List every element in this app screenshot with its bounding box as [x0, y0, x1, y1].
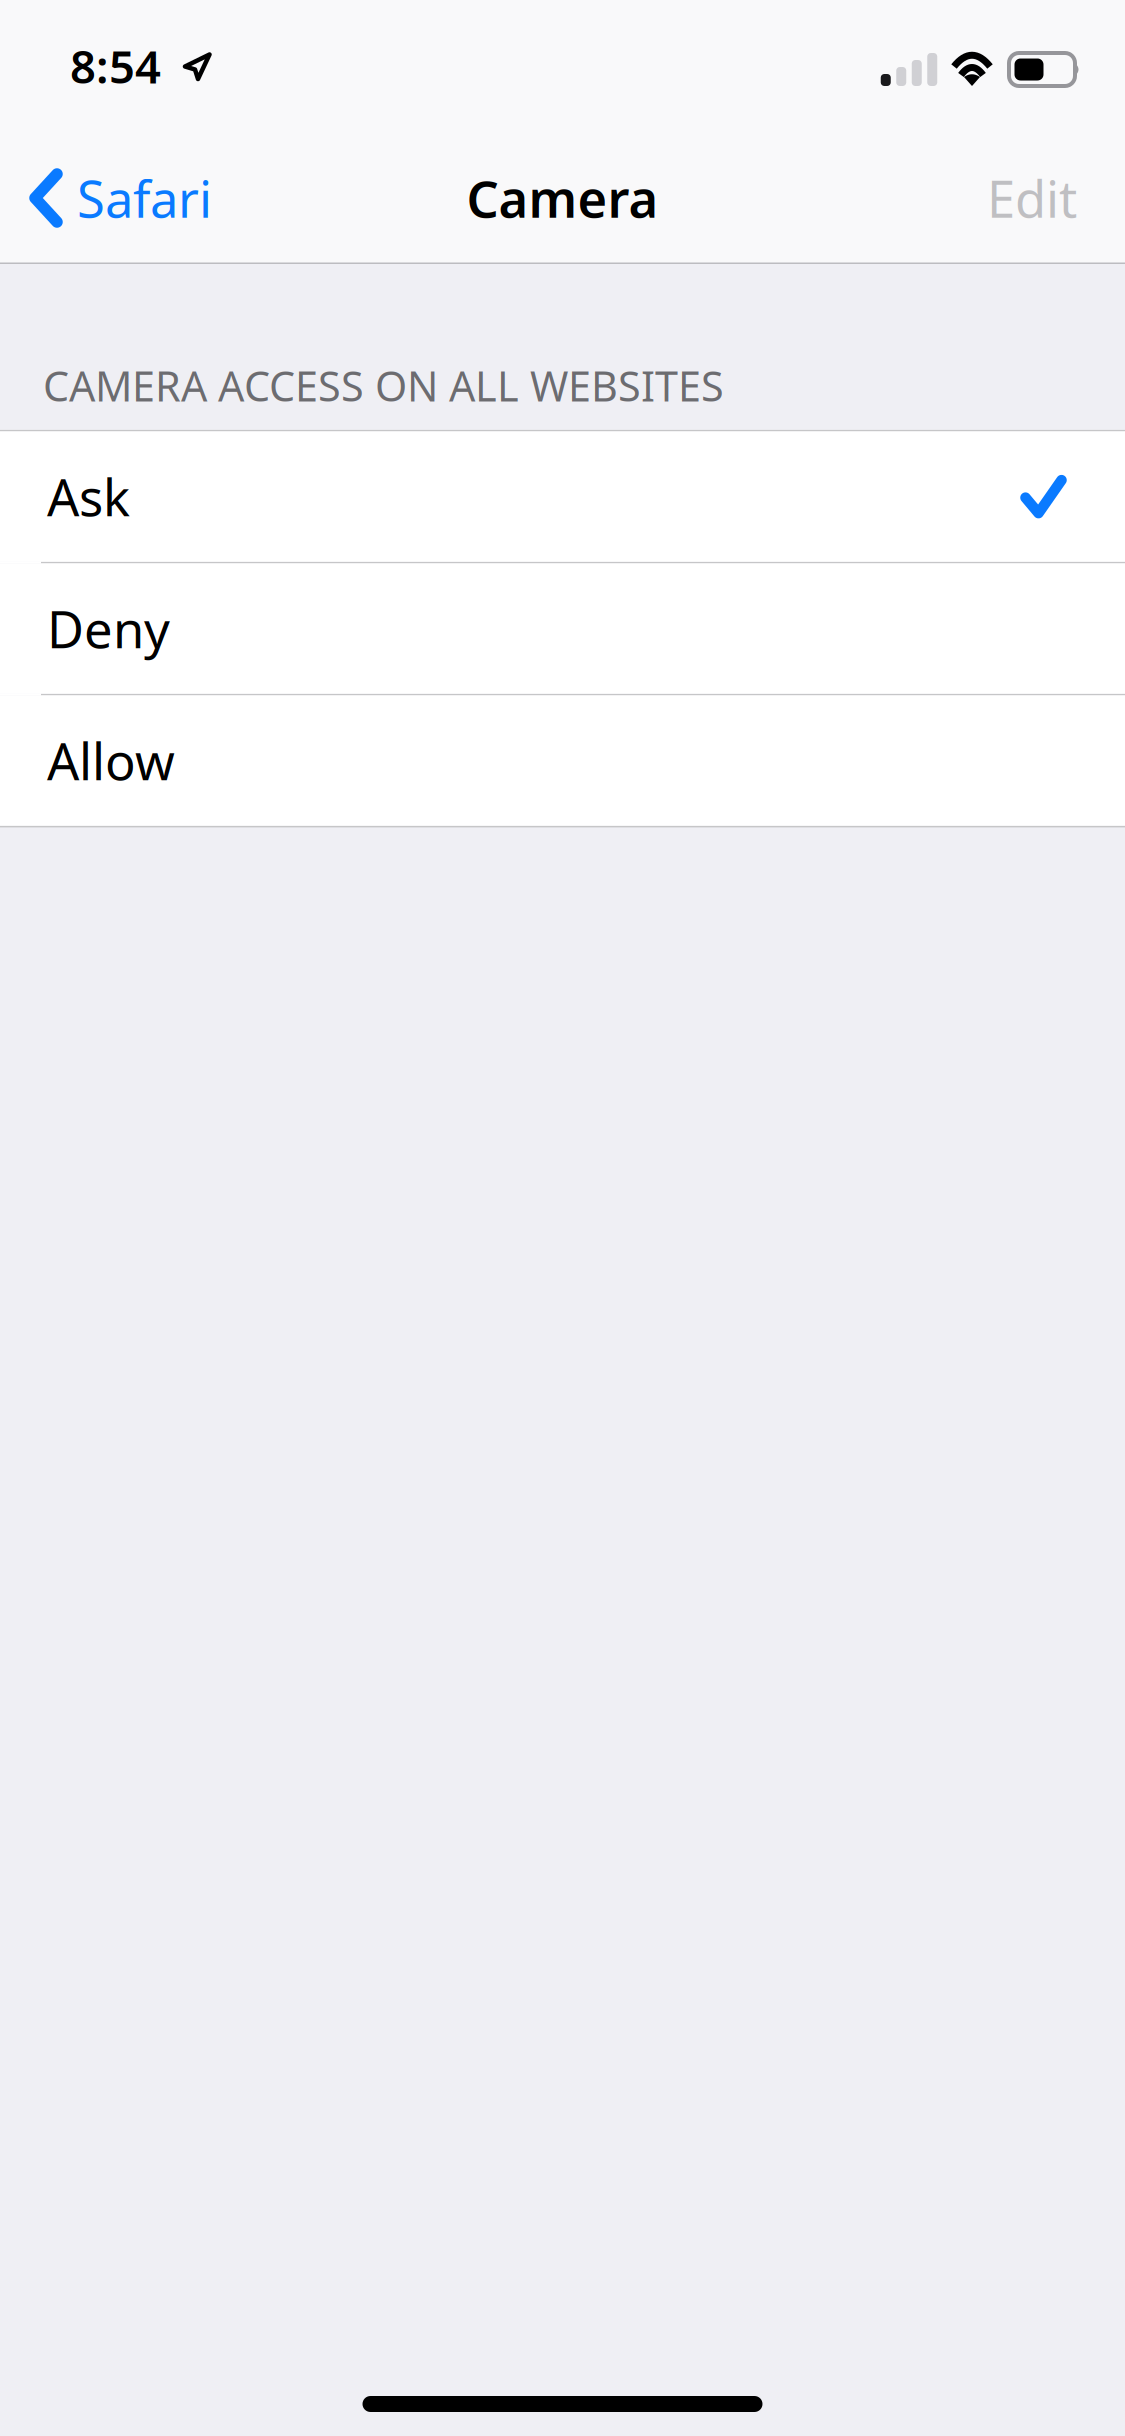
staticText: CAMERA ACCESS ON ALL WEBSITES — [43, 358, 724, 413]
staticText: Allow — [47, 727, 175, 794]
button[interactable]: Ask — [0, 431, 1125, 562]
button[interactable]: Deny — [0, 563, 1125, 694]
button[interactable]: Allow — [0, 695, 1125, 826]
staticText: Edit — [987, 164, 1077, 232]
staticText: 8:54 — [70, 36, 161, 96]
button[interactable]: Edit — [967, 146, 1125, 250]
staticText: Deny — [47, 595, 170, 662]
staticText: Ask — [47, 463, 130, 530]
button[interactable]: Back to Safari — [0, 146, 222, 250]
staticText: Camera — [466, 164, 658, 232]
staticText: Safari — [77, 164, 212, 232]
